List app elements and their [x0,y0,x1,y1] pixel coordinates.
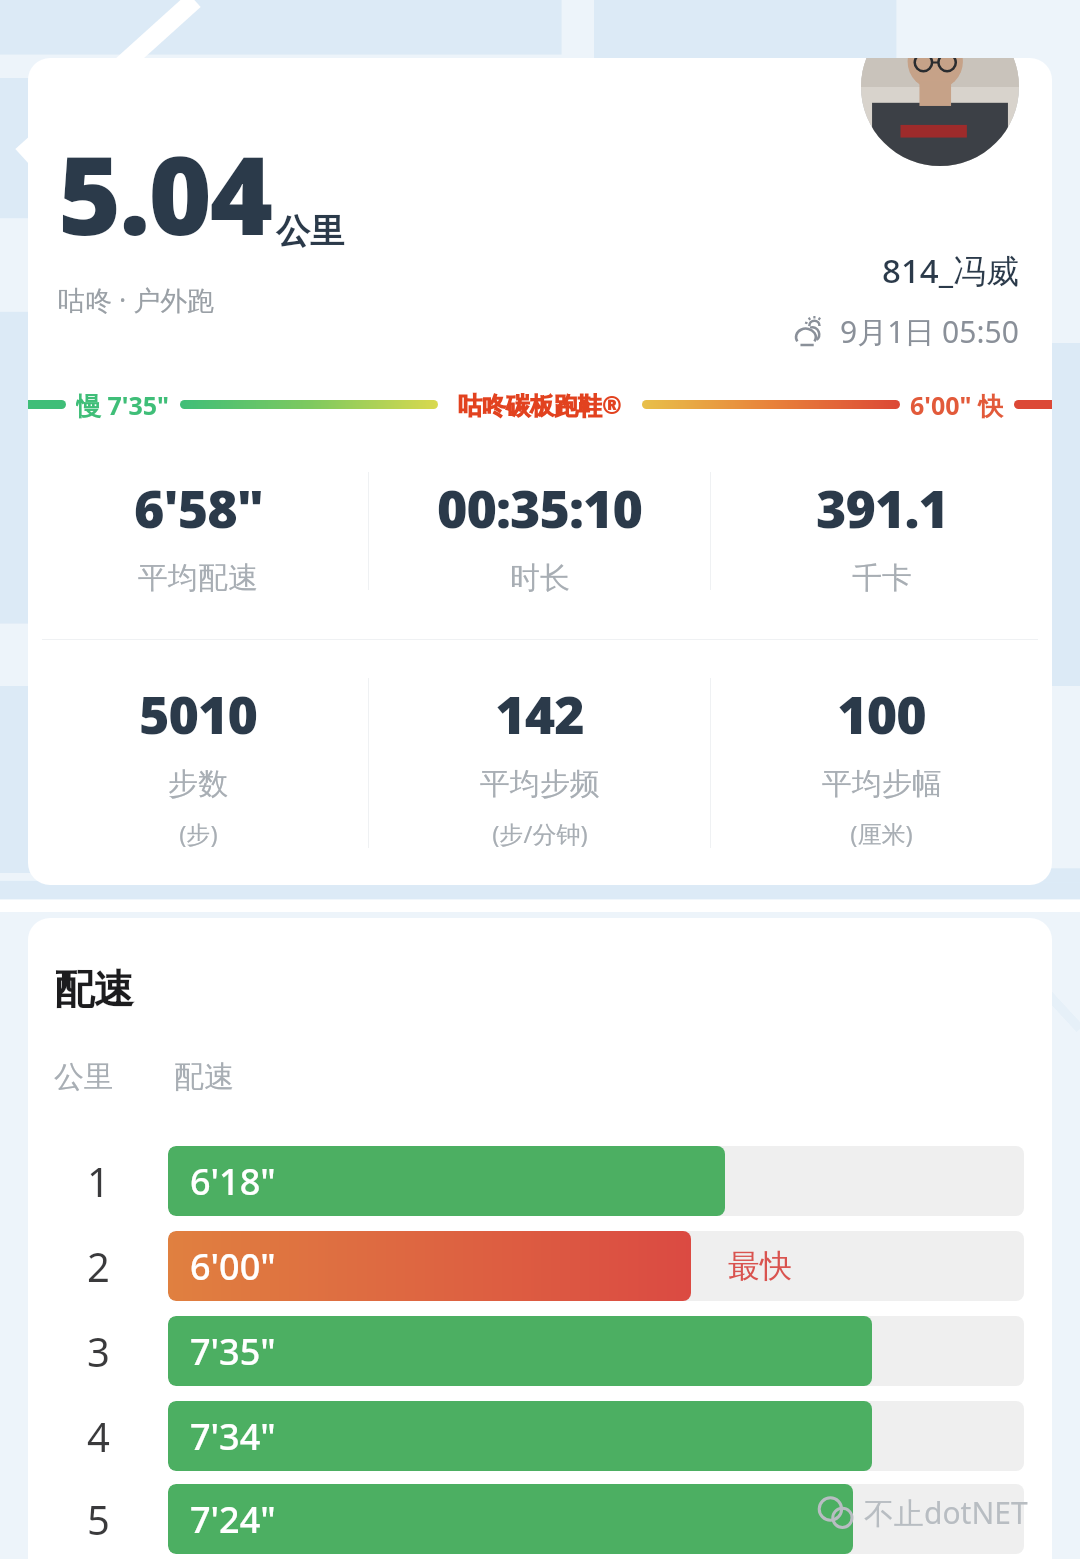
staticText: 814_冯威 [882,248,1019,293]
staticText: 1 [87,1154,110,1208]
staticText: 3 [87,1324,110,1378]
staticText: 咕咚碳板跑鞋® [458,388,622,420]
staticText: 时长 [510,559,570,597]
button[interactable]: Profile photo [861,58,1019,166]
staticText: 平均配速 [138,559,258,597]
staticText: 5.04 [58,120,272,267]
staticText: 咕咚 · 户外跑 [58,281,215,318]
staticText: 6'00" 快 [910,388,1004,420]
button[interactable]: 5010 [28,678,368,850]
staticText: 5 [87,1492,110,1546]
staticText: 平均步幅 [822,765,942,803]
button[interactable]: 2 [28,1223,1052,1308]
button[interactable]: 3 [28,1308,1052,1393]
staticText: 平均步频 [480,765,600,803]
staticText: (步) [179,817,218,850]
staticText: 7'34" [190,1412,276,1461]
button[interactable]: 391.1 [711,472,1052,597]
staticText: 5010 [139,678,257,749]
staticText: 7'24" [190,1495,276,1544]
button[interactable]: 6'58" [28,472,368,597]
staticText: 6'00" [190,1242,276,1291]
staticText: (步/分钟) [492,817,588,850]
staticText: 不止dotNET [864,1492,1028,1533]
button[interactable]: 1 [28,1138,1052,1223]
staticText: 100 [837,678,926,749]
button[interactable]: 00:35:10 [369,472,710,597]
button[interactable]: 5 [28,1478,1052,1559]
staticText: 公里 [54,1058,114,1096]
staticText: 00:35:10 [437,472,642,543]
staticText: 6'58" [134,472,263,543]
staticText: 最快 [728,1246,792,1286]
staticText: 2 [87,1239,110,1293]
staticText: 391.1 [816,472,948,543]
staticText: (厘米) [850,817,913,850]
button[interactable]: 4 [28,1393,1052,1478]
staticText: 7'35" [190,1327,276,1376]
button[interactable]: 100 [711,678,1052,850]
button[interactable]: 142 [369,678,710,850]
staticText: 千卡 [852,559,912,597]
staticText: 配速 [174,1058,234,1096]
staticText: 慢 7'35" [76,388,170,420]
staticText: 步数 [168,765,228,803]
staticText: 9月1日 05:50 [840,311,1019,352]
staticText: 142 [495,678,584,749]
staticText: 4 [87,1409,110,1463]
staticText: 配速 [54,964,134,1014]
staticText: 6'18" [190,1157,276,1206]
staticText: 公里 [276,210,344,253]
